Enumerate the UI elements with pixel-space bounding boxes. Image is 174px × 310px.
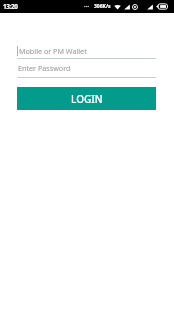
other: Alarm <box>132 4 138 10</box>
staticText: Enter Password <box>18 63 71 73</box>
button[interactable]: LOGIN <box>17 87 156 110</box>
other: Battery <box>156 3 168 10</box>
staticText: 13:20 <box>3 2 18 11</box>
other: Mobile signal SIM 2 <box>147 4 153 10</box>
other: More notifications <box>84 4 89 9</box>
staticText: 306K/s <box>94 3 111 10</box>
button[interactable]: Mobile or PM Wallet <box>17 43 156 59</box>
other: Wi-Fi <box>114 4 121 10</box>
staticText: LOGIN <box>71 92 103 106</box>
other: Mobile signal SIM 1 <box>124 4 130 10</box>
button[interactable]: Enter Password <box>17 59 156 78</box>
staticText: Mobile or PM Wallet <box>19 46 87 56</box>
